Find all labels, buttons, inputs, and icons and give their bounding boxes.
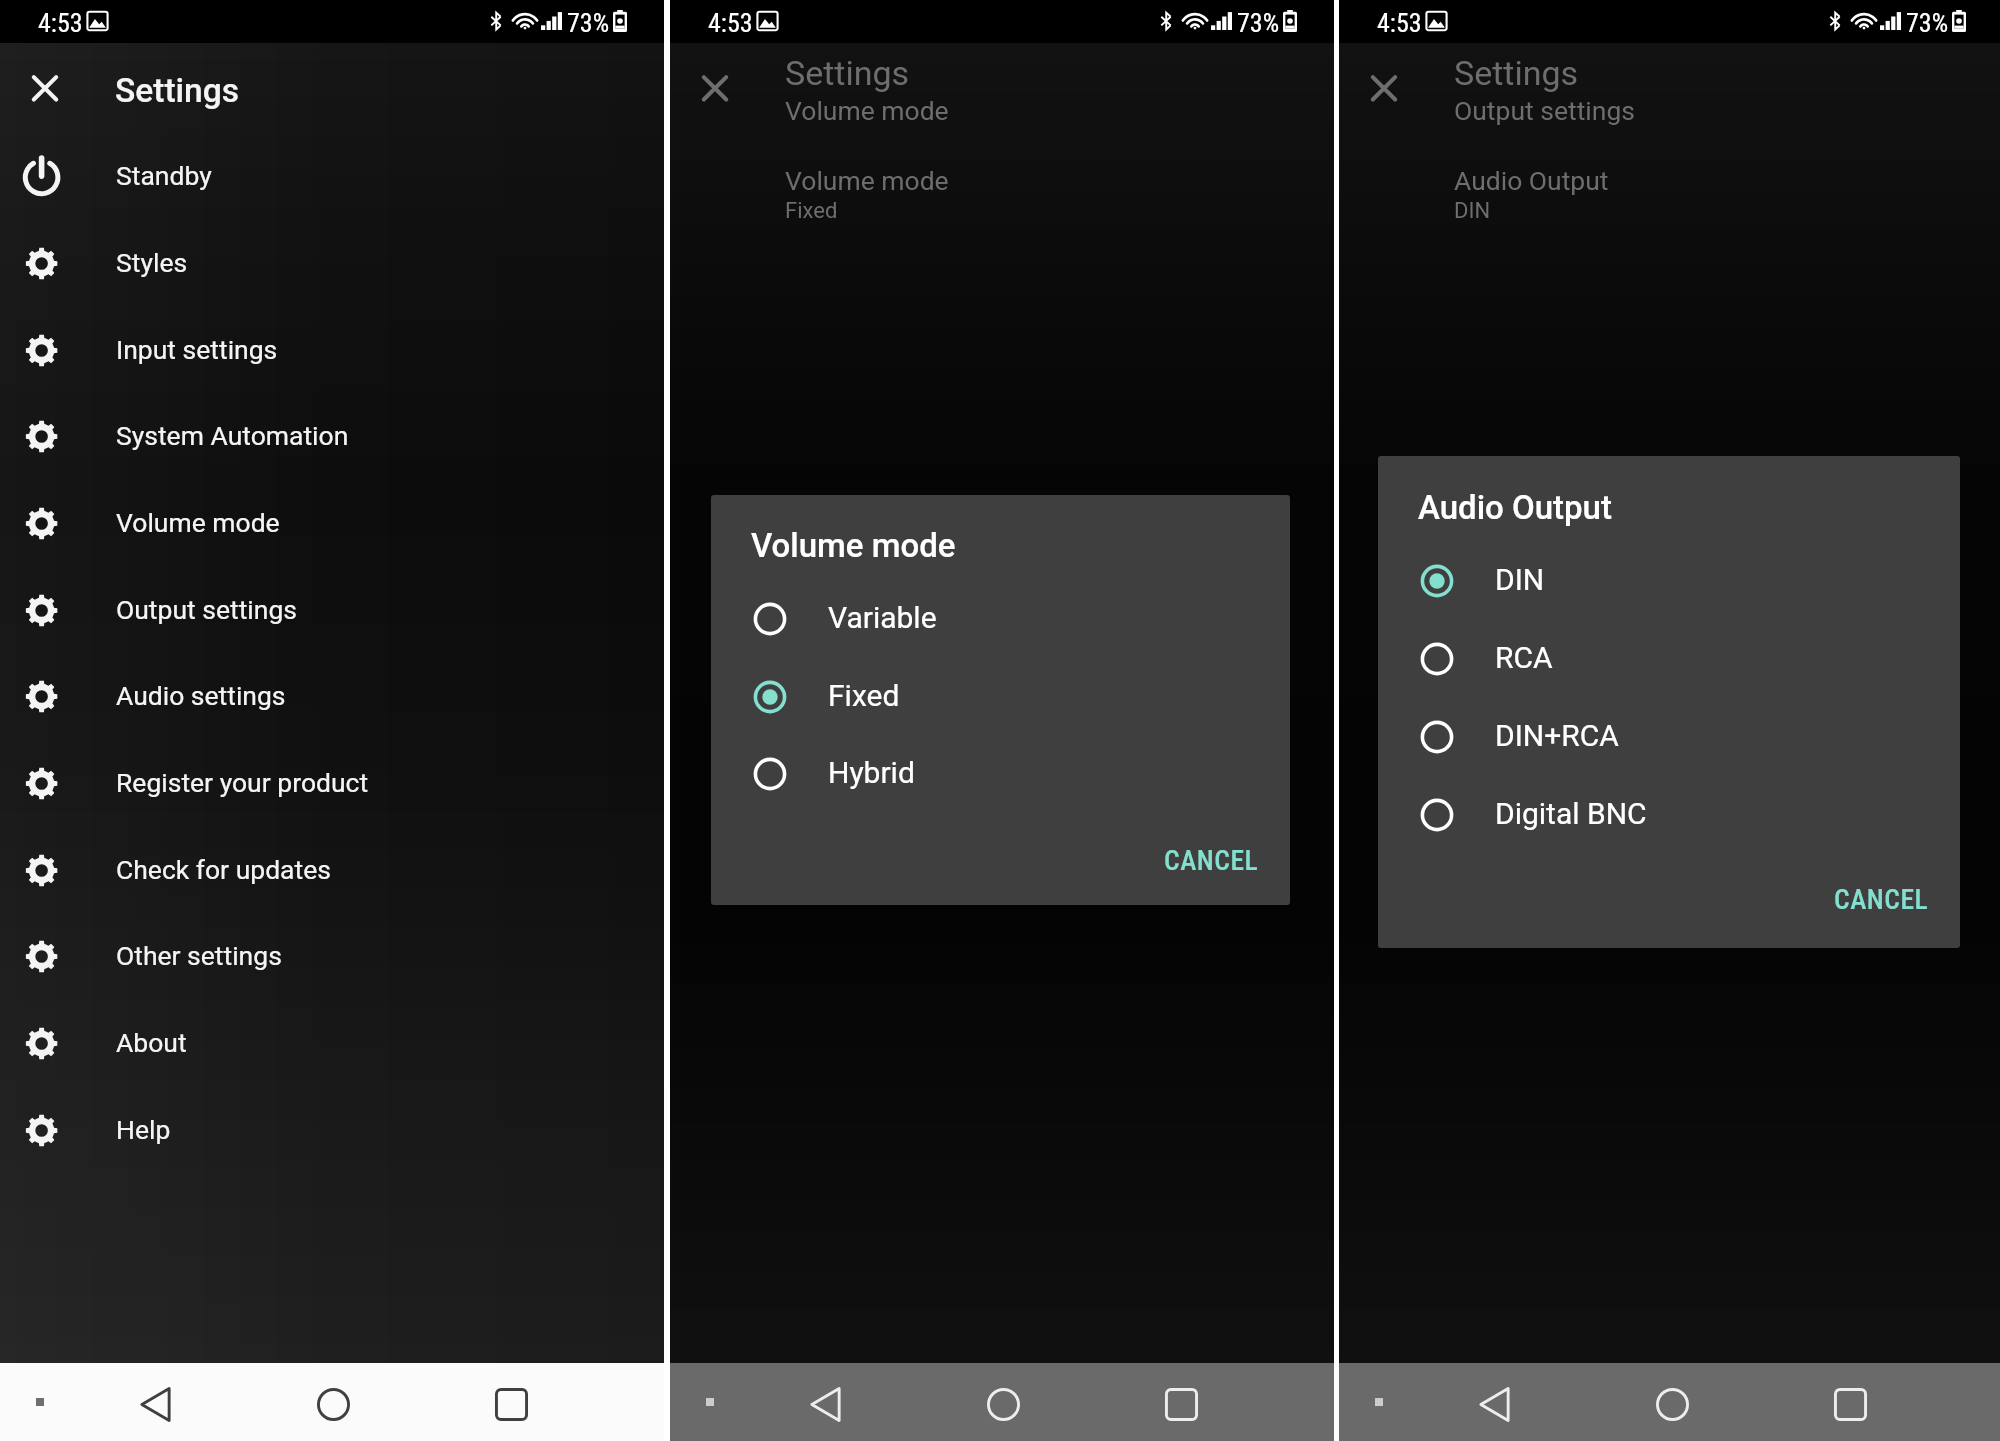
button[interactable]: Other settings <box>0 916 664 1003</box>
button[interactable]: Home <box>313 1384 355 1426</box>
staticText: Settings <box>115 71 239 110</box>
staticText: Volume mode <box>785 95 949 126</box>
staticText: Variable <box>828 600 937 635</box>
staticText: 73% <box>1906 8 1949 38</box>
button[interactable]: Standby <box>0 136 664 223</box>
button[interactable]: Back <box>1475 1384 1517 1426</box>
button[interactable]: Audio settings <box>0 656 664 743</box>
staticText: Volume mode <box>116 507 280 538</box>
button[interactable]: Recents <box>1830 1384 1872 1426</box>
staticText: Settings <box>785 53 910 93</box>
staticText: System Automation <box>116 420 349 451</box>
button[interactable]: CANCEL <box>1830 879 1950 927</box>
staticText: Help <box>116 1114 171 1145</box>
button[interactable]: Help <box>0 1090 664 1177</box>
staticText: Input settings <box>116 334 278 365</box>
staticText: CANCEL <box>1834 883 1929 915</box>
button[interactable]: Volume mode <box>0 483 664 570</box>
staticText: Standby <box>116 160 212 191</box>
staticText: Volume mode <box>785 165 949 196</box>
staticText: Other settings <box>116 940 282 971</box>
button[interactable]: Back <box>136 1384 178 1426</box>
button[interactable]: Hybrid <box>711 734 1290 812</box>
staticText: About <box>116 1027 187 1058</box>
staticText: Hybrid <box>828 755 915 790</box>
button[interactable]: RCA <box>1378 619 1960 697</box>
staticText: Volume mode <box>751 526 956 565</box>
button[interactable]: Fixed <box>711 657 1290 735</box>
staticText: 73% <box>1237 8 1280 38</box>
staticText: Fixed <box>828 678 900 713</box>
button[interactable]: Variable <box>711 579 1290 657</box>
button[interactable]: Close <box>14 58 76 120</box>
button[interactable]: Register your product <box>0 743 664 830</box>
staticText: Audio Output <box>1418 488 1612 527</box>
button[interactable]: About <box>0 1003 664 1090</box>
button[interactable]: Close <box>1353 58 1415 120</box>
staticText: Styles <box>116 247 188 278</box>
button[interactable]: Recents <box>1161 1384 1203 1426</box>
button[interactable]: Home <box>1652 1384 1694 1426</box>
staticText: Fixed <box>785 198 838 224</box>
button[interactable]: Digital BNC <box>1378 775 1960 853</box>
staticText: 4:53 <box>38 8 83 38</box>
staticText: Digital BNC <box>1495 796 1647 831</box>
staticText: Settings <box>1454 53 1579 93</box>
staticText: 4:53 <box>1377 8 1422 38</box>
button[interactable]: Output settings <box>0 570 664 657</box>
button[interactable]: DIN <box>1378 541 1960 619</box>
button[interactable]: Back <box>806 1384 848 1426</box>
staticText: Output settings <box>116 594 297 625</box>
staticText: DIN <box>1454 198 1491 224</box>
button[interactable]: DIN+RCA <box>1378 697 1960 775</box>
button[interactable]: Input settings <box>0 310 664 397</box>
button[interactable]: Close <box>684 58 746 120</box>
staticText: Register your product <box>116 767 369 798</box>
button[interactable]: Styles <box>0 223 664 310</box>
staticText: Audio settings <box>116 680 286 711</box>
staticText: Output settings <box>1454 95 1635 126</box>
button[interactable]: Check for updates <box>0 830 664 917</box>
button[interactable]: System Automation <box>0 396 664 483</box>
staticText: Check for updates <box>116 854 331 885</box>
staticText: DIN+RCA <box>1495 718 1619 753</box>
staticText: CANCEL <box>1164 844 1259 876</box>
staticText: 73% <box>567 8 610 38</box>
button[interactable]: Recents <box>491 1384 533 1426</box>
staticText: RCA <box>1495 640 1553 675</box>
staticText: Audio Output <box>1454 165 1609 196</box>
staticText: 4:53 <box>708 8 753 38</box>
button[interactable]: CANCEL <box>1160 840 1280 888</box>
button[interactable]: Home <box>983 1384 1025 1426</box>
staticText: DIN <box>1495 562 1545 597</box>
